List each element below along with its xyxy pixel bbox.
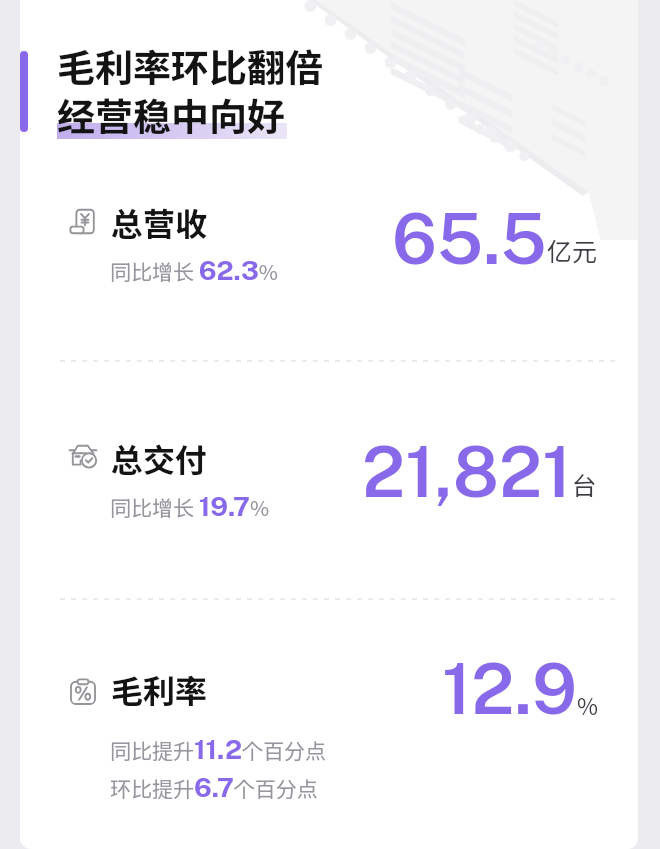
- staticText: 毛利率: [111, 672, 208, 710]
- staticText: 总交付: [111, 441, 208, 479]
- staticText: 毛利率环比翻倍: [57, 45, 324, 90]
- button[interactable]: Total revenue: [20, 170, 638, 360]
- staticText: 环比提升6.7个百分点: [110, 771, 318, 803]
- staticText: 12.9: [442, 647, 577, 729]
- other: Total deliveries: [68, 440, 98, 470]
- other: Total revenue: [68, 208, 98, 238]
- staticText: %: [577, 693, 598, 720]
- staticText: 总营收: [111, 205, 208, 243]
- other: Gross margin: [68, 677, 98, 707]
- staticText: 同比增长 62.3%: [110, 254, 279, 286]
- staticText: 同比增长 19.7%: [110, 490, 270, 522]
- button[interactable]: Total deliveries: [20, 400, 638, 598]
- staticText: 21,821: [362, 430, 572, 512]
- staticText: 65.5: [392, 197, 547, 279]
- staticText: 同比提升11.2个百分点: [110, 733, 327, 765]
- staticText: 台: [572, 471, 598, 501]
- button[interactable]: Gross margin: [20, 620, 638, 830]
- staticText: 亿元: [547, 237, 598, 267]
- staticText: 经营稳中向好: [57, 94, 286, 139]
